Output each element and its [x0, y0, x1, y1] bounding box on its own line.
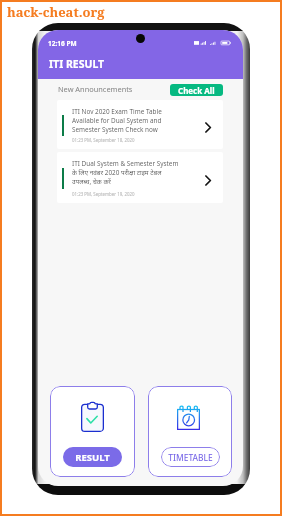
staticText: Available for Dual System and: [72, 116, 162, 125]
staticText: उपलब्ध, चेक करें: [72, 177, 111, 186]
button[interactable]: ITI Nov 2020 Exam Time Table: [57, 100, 223, 149]
other: Result: [81, 402, 104, 432]
staticText: Semester System Check now: [72, 125, 158, 134]
button[interactable]: Result: [50, 386, 135, 477]
staticText: ITI Dual System & Semester System: [72, 159, 179, 168]
other: Timetable: [177, 406, 200, 430]
staticText: New Announcements: [58, 84, 133, 94]
staticText: TIMETABLE: [168, 452, 213, 463]
button[interactable]: ITI Dual System & Semester System: [57, 152, 223, 203]
staticText: 01:23 PM, September 18, 2020: [72, 137, 135, 143]
staticText: 01:23 PM, September 19, 2020: [72, 191, 135, 197]
button[interactable]: Timetable: [148, 386, 232, 477]
staticText: के लिए नवंबर 2020 परीक्षा टाइम टेबल: [72, 168, 162, 177]
staticText: ITI Nov 2020 Exam Time Table: [72, 107, 162, 116]
staticText: Check All: [178, 85, 215, 96]
button[interactable]: Check All: [170, 84, 223, 96]
staticText: RESULT: [75, 451, 110, 464]
staticText: 12:16 PM: [48, 39, 77, 48]
staticText: ITI RESULT: [49, 57, 105, 71]
staticText: hack-cheat.org: [7, 3, 105, 21]
